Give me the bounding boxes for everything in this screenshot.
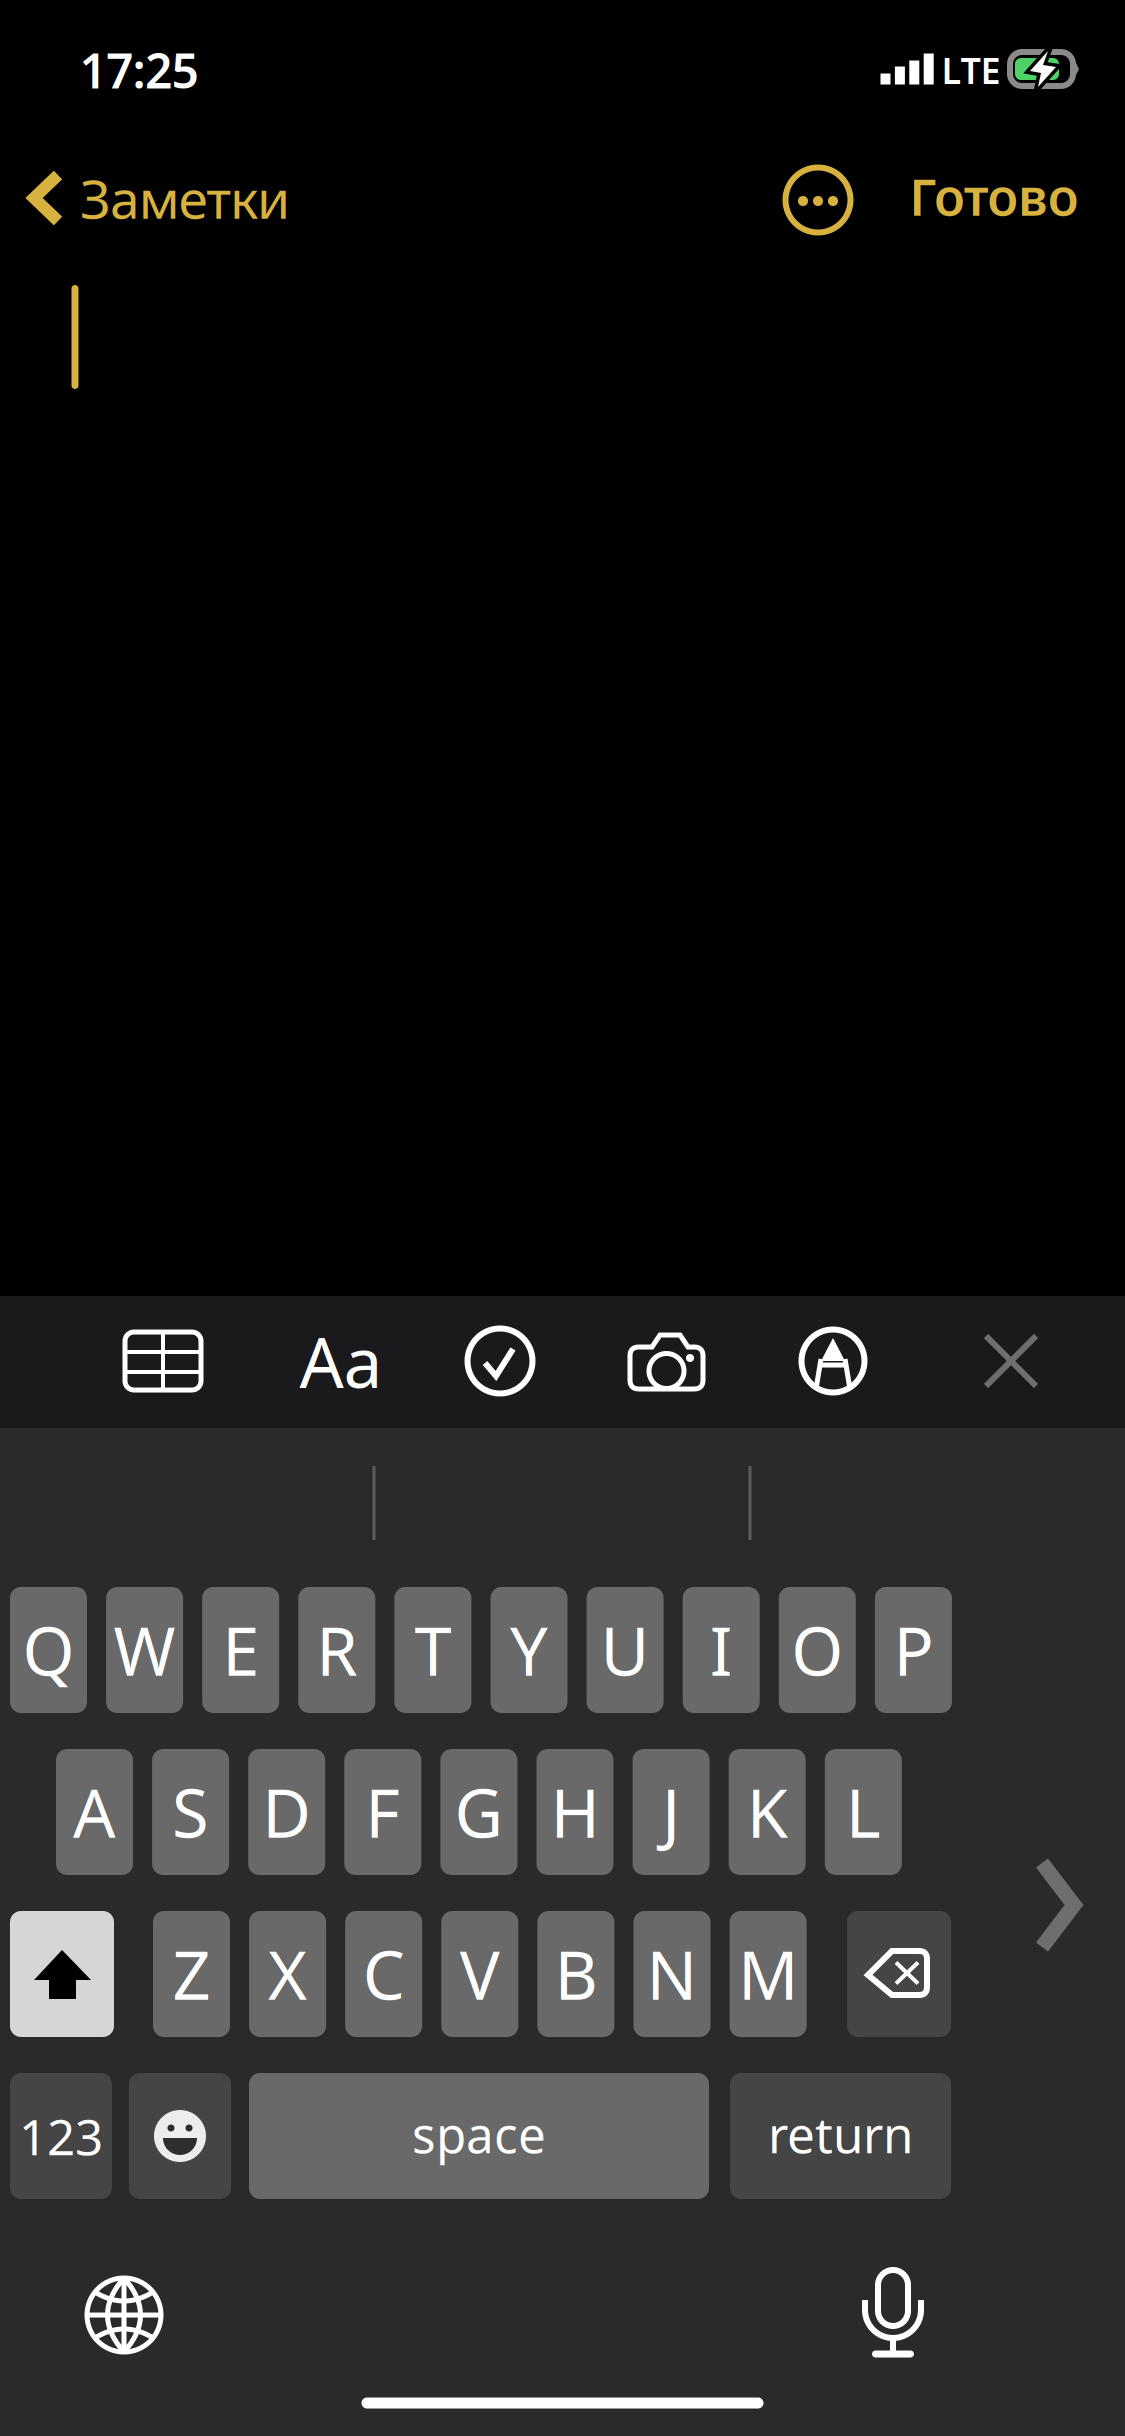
button[interactable]: G: [440, 1749, 517, 1875]
button[interactable]: K: [729, 1749, 806, 1875]
button[interactable]: Expand keyboard: [1034, 1855, 1094, 1965]
button[interactable]: Insert table: [118, 1321, 208, 1401]
staticText: Заметки: [80, 163, 290, 233]
button[interactable]: R: [298, 1587, 375, 1713]
staticText: L: [846, 1768, 881, 1856]
staticText: K: [747, 1768, 788, 1856]
button[interactable]: X: [249, 1911, 326, 2037]
staticText: Z: [172, 1930, 210, 2018]
staticText: S: [172, 1768, 209, 1856]
staticText: A: [73, 1768, 116, 1856]
staticText: Готово: [909, 162, 1079, 230]
staticText: F: [365, 1768, 400, 1856]
button[interactable]: V: [441, 1911, 518, 2037]
staticText: J: [662, 1768, 680, 1856]
button[interactable]: More options: [782, 164, 854, 236]
staticText: G: [454, 1768, 503, 1856]
button[interactable]: F: [344, 1749, 421, 1875]
staticText: U: [601, 1606, 650, 1694]
button[interactable]: P: [875, 1587, 952, 1713]
staticText: I: [710, 1606, 733, 1694]
staticText: Y: [510, 1606, 548, 1694]
button[interactable]: L: [825, 1749, 902, 1875]
button[interactable]: Delete: [847, 1911, 951, 2037]
button[interactable]: M: [730, 1911, 807, 2037]
button[interactable]: D: [248, 1749, 325, 1875]
staticText: M: [738, 1930, 798, 2018]
button[interactable]: O: [779, 1587, 856, 1713]
button[interactable]: A: [56, 1749, 133, 1875]
button[interactable]: Y: [490, 1587, 567, 1713]
button[interactable]: Camera: [628, 1327, 708, 1395]
button[interactable]: E: [202, 1587, 279, 1713]
staticText: V: [460, 1930, 500, 2018]
staticText: O: [791, 1606, 843, 1694]
button[interactable]: B: [537, 1911, 614, 2037]
staticText: return: [768, 2101, 913, 2167]
staticText: X: [268, 1930, 307, 2018]
staticText: space: [412, 2101, 546, 2167]
button[interactable]: N: [633, 1911, 710, 2037]
staticText: N: [646, 1930, 697, 2018]
button[interactable]: 123: [10, 2073, 112, 2199]
button[interactable]: J: [633, 1749, 710, 1875]
button[interactable]: T: [394, 1587, 471, 1713]
staticText: T: [414, 1606, 451, 1694]
staticText: W: [114, 1606, 176, 1694]
staticText: LTE: [941, 46, 1000, 94]
button[interactable]: Заметки: [0, 153, 290, 243]
button[interactable]: S: [152, 1749, 229, 1875]
button[interactable]: Markup: [799, 1327, 867, 1395]
button[interactable]: Shift: [10, 1911, 114, 2037]
staticText: C: [363, 1930, 405, 2018]
button[interactable]: Готово: [909, 151, 1079, 241]
staticText: B: [554, 1930, 597, 2018]
staticText: 17:25: [79, 38, 198, 102]
staticText: D: [262, 1768, 311, 1856]
staticText: Aa: [299, 1315, 382, 1407]
button[interactable]: U: [587, 1587, 664, 1713]
staticText: H: [550, 1768, 599, 1856]
button[interactable]: C: [345, 1911, 422, 2037]
button[interactable]: Checklist: [467, 1328, 533, 1394]
button[interactable]: Z: [153, 1911, 230, 2037]
button[interactable]: H: [536, 1749, 613, 1875]
staticText: P: [893, 1606, 933, 1694]
staticText: E: [222, 1606, 259, 1694]
button[interactable]: space: [249, 2073, 709, 2199]
button[interactable]: Emoji keyboard: [129, 2073, 231, 2199]
staticText: R: [316, 1606, 357, 1694]
button[interactable]: W: [106, 1587, 183, 1713]
button[interactable]: Text formatting: [291, 1321, 391, 1401]
staticText: 123: [19, 2103, 103, 2169]
button[interactable]: Switch keyboard: [78, 2269, 170, 2361]
button[interactable]: Close toolbar: [971, 1321, 1051, 1401]
button[interactable]: return: [730, 2073, 951, 2199]
button[interactable]: Dictate: [863, 2268, 923, 2360]
button[interactable]: I: [683, 1587, 760, 1713]
button[interactable]: Q: [10, 1587, 87, 1713]
staticText: Q: [22, 1606, 74, 1694]
